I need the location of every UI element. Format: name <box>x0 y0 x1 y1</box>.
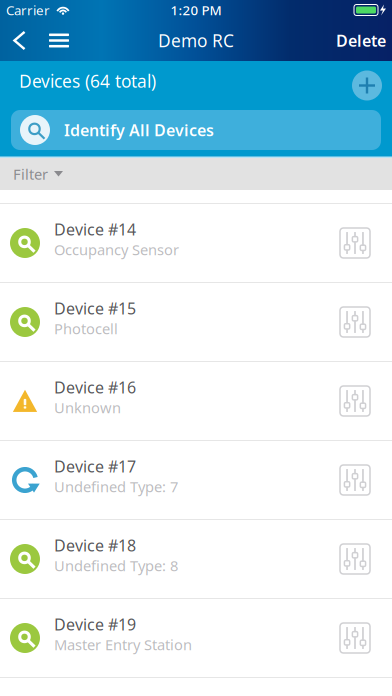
staticText: Device #15 <box>54 298 136 319</box>
staticText: Identify All Devices <box>64 119 214 141</box>
button[interactable]: Device #15 <box>0 283 392 362</box>
staticText: Photocell <box>54 319 118 338</box>
button[interactable]: Device #14 <box>0 204 392 283</box>
staticText: 1:20 PM <box>170 1 221 19</box>
button[interactable]: Identify All Devices <box>0 110 392 150</box>
staticText: Filter <box>13 164 48 184</box>
staticText: Demo RC <box>158 29 234 52</box>
button[interactable]: Filter <box>0 158 392 190</box>
staticText: Carrier <box>6 1 50 19</box>
staticText: Master Entry Station <box>54 635 192 654</box>
button[interactable]: Device #16 <box>0 362 392 441</box>
button[interactable]: Delete <box>336 20 392 61</box>
button[interactable]: Device #19 <box>0 599 392 678</box>
staticText: Device #14 <box>54 219 136 240</box>
staticText: Delete <box>336 30 386 51</box>
staticText: Unknown <box>54 398 121 417</box>
staticText: Undefined Type: 7 <box>54 477 178 496</box>
button[interactable]: Menu <box>33 20 75 61</box>
button[interactable]: Back <box>0 20 33 61</box>
button[interactable]: Device #17 <box>0 441 392 520</box>
staticText: Occupancy Sensor <box>54 240 179 259</box>
staticText: Device #16 <box>54 377 136 398</box>
staticText: Devices (64 total) <box>19 69 156 92</box>
button[interactable]: Add device <box>352 70 392 100</box>
staticText: Device #18 <box>54 535 136 556</box>
button[interactable]: Device #18 <box>0 520 392 599</box>
staticText: Undefined Type: 8 <box>54 556 178 575</box>
staticText: Device #17 <box>54 456 136 477</box>
staticText: Device #19 <box>54 614 136 635</box>
